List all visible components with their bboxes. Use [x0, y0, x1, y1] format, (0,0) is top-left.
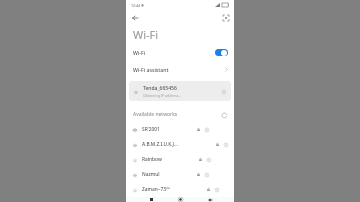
staticText: A.B.M.Z.I.U.K.J.J.S	[142, 141, 179, 148]
staticText: Wi-Fi	[133, 49, 146, 56]
staticText: Zaman~73™	[142, 186, 170, 193]
staticText: Rainbow	[142, 156, 162, 163]
button[interactable]: Network details	[203, 126, 210, 133]
button[interactable]: Wi-Fi	[126, 44, 234, 61]
button[interactable]: Network details	[205, 156, 212, 163]
staticText: Wi-Fi	[133, 27, 159, 42]
button[interactable]: Recent apps	[146, 197, 156, 202]
staticText: Nazmul	[142, 171, 160, 178]
button[interactable]: Network details	[213, 186, 220, 193]
staticText: Tenda_665456	[143, 85, 177, 92]
button[interactable]: Tenda_665456	[129, 81, 231, 101]
button[interactable]: Back	[205, 197, 215, 202]
button[interactable]: Home	[175, 197, 185, 202]
button[interactable]: Scanning	[220, 111, 228, 119]
staticText: Obtaining IP address…	[143, 93, 182, 98]
button[interactable]: A.B.M.Z.I.U.K.J.J.S	[126, 137, 234, 152]
staticText: Available networks	[133, 111, 178, 118]
button[interactable]: Scan QR code	[220, 12, 231, 23]
button[interactable]: Nazmul	[126, 167, 234, 182]
button[interactable]: SR'2001	[126, 122, 234, 137]
button[interactable]: Rainbow	[126, 152, 234, 167]
button[interactable]: Wi-Fi assistant	[126, 61, 234, 78]
button[interactable]: Network details	[203, 171, 210, 178]
staticText: Wi-Fi assistant	[133, 66, 169, 73]
button[interactable]: Network details	[222, 141, 229, 148]
button[interactable]: Network details	[220, 88, 227, 95]
button[interactable]: Zaman~73™	[126, 182, 234, 197]
button[interactable]: Back	[129, 12, 140, 23]
staticText: SR'2001	[142, 126, 160, 133]
staticText: 12:44	[131, 3, 140, 8]
